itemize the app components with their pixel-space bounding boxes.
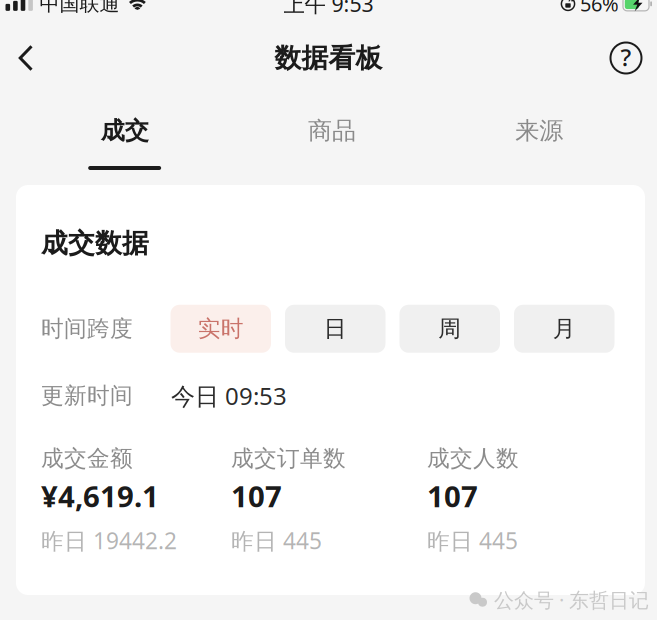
staticText: 来源 [515,116,563,145]
staticText: 上午 9:53 [283,0,373,18]
button[interactable]: 实时 [170,305,271,353]
staticText: 周 [438,315,461,343]
staticText: 实时 [198,315,244,343]
staticText: 昨日 19442.2 [41,525,177,555]
button[interactable]: 商品 [228,89,436,185]
staticText: 商品 [308,116,356,145]
staticText: 成交订单数 [231,445,346,472]
staticText: 今日 09:53 [171,380,287,412]
button[interactable]: 日 [285,305,385,353]
staticText: 成交金额 [41,445,133,472]
staticText: 成交数据 [41,227,149,260]
button[interactable]: 返回 [0,27,52,89]
staticText: 成交 [101,116,149,145]
button[interactable]: 周 [399,305,500,353]
staticText: 56% [580,0,619,17]
button[interactable]: 来源 [436,89,643,185]
button[interactable]: 成交 [21,89,228,185]
button[interactable]: 月 [514,305,614,353]
staticText: 昨日 445 [231,525,322,555]
staticText: 更新时间 [41,382,133,410]
staticText: 时间跨度 [41,315,133,343]
button[interactable]: 帮助 [595,27,657,89]
staticText: 日 [324,315,347,343]
staticText: 107 [427,476,478,515]
staticText: 成交人数 [427,445,519,472]
staticText: 中国联通 [39,0,119,16]
staticText: 107 [231,476,282,515]
staticText: 公众号 · 东哲日记 [494,586,649,613]
staticText: 月 [553,315,576,343]
staticText: ? [620,41,631,73]
staticText: 数据看板 [274,42,382,74]
staticText: ¥4,619.1 [41,476,159,515]
staticText: 昨日 445 [427,525,518,555]
